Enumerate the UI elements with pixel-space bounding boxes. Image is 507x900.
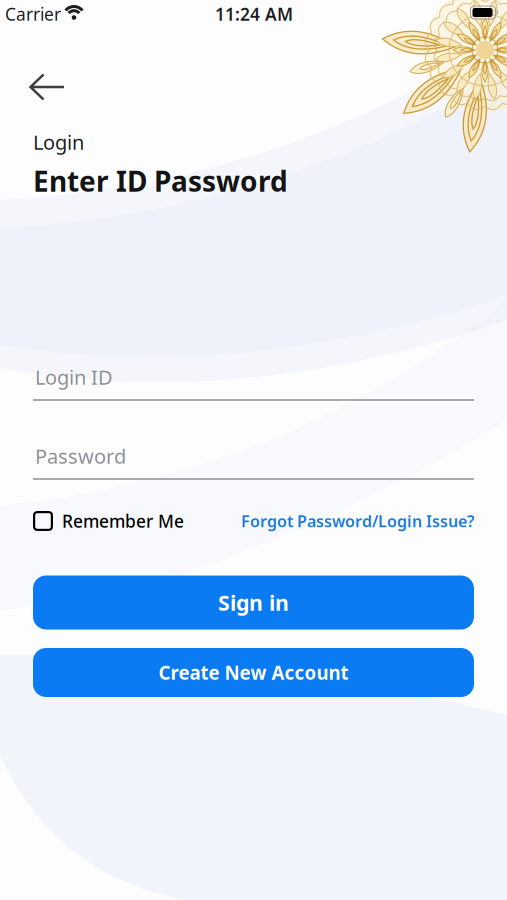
button[interactable]: Back bbox=[29, 73, 65, 101]
staticText: Create New Account bbox=[158, 660, 348, 685]
staticText: Login ID bbox=[35, 364, 113, 390]
staticText: 11:24 AM bbox=[215, 2, 293, 25]
staticText: Carrier bbox=[5, 2, 61, 25]
staticText: Enter ID Password bbox=[33, 162, 288, 200]
button[interactable]: Remember Me bbox=[33, 509, 184, 532]
staticText: Forgot Password/Login Issue? bbox=[241, 510, 474, 532]
button[interactable]: Forgot Password/Login Issue? bbox=[241, 510, 474, 532]
button[interactable]: Create New Account bbox=[33, 648, 474, 697]
staticText: Login bbox=[33, 129, 84, 155]
button[interactable]: Sign in bbox=[33, 575, 474, 629]
staticText: Password bbox=[35, 443, 126, 469]
staticText: Sign in bbox=[218, 588, 289, 617]
staticText: Remember Me bbox=[62, 509, 184, 532]
